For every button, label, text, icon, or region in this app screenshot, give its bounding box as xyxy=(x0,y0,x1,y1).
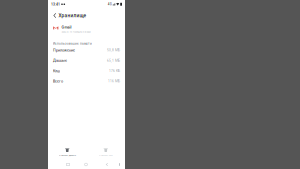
button[interactable]: Очистить данные xyxy=(48,145,86,160)
staticText: Хранилище xyxy=(58,13,86,18)
staticText: 2025.01.19.712345678.Release xyxy=(61,30,90,33)
button[interactable]: Back xyxy=(101,160,113,169)
staticText: 50,8 МБ xyxy=(107,48,120,52)
staticText: 176 КБ xyxy=(109,69,120,73)
staticText: 116 МБ xyxy=(108,79,120,83)
staticText: Всего xyxy=(53,79,63,83)
staticText: Данные xyxy=(53,58,67,63)
staticText: Использование памяти xyxy=(53,42,92,46)
button[interactable]: Hide keyboard xyxy=(62,160,74,169)
button[interactable]: Back xyxy=(51,8,58,22)
staticText: 4G xyxy=(108,2,112,6)
staticText: 65,1 МБ xyxy=(107,59,120,62)
button[interactable]: Recent apps xyxy=(80,160,92,169)
staticText: Приложение xyxy=(53,48,75,52)
staticText: Gmail xyxy=(61,25,71,29)
button[interactable]: Очистить кэш xyxy=(86,145,125,160)
button[interactable]: Home xyxy=(114,160,125,169)
staticText: Очистить кэш xyxy=(99,154,113,157)
staticText: Кэш xyxy=(53,69,60,73)
staticText: 13:41 xyxy=(51,2,60,6)
staticText: Очистить данные xyxy=(59,154,76,157)
